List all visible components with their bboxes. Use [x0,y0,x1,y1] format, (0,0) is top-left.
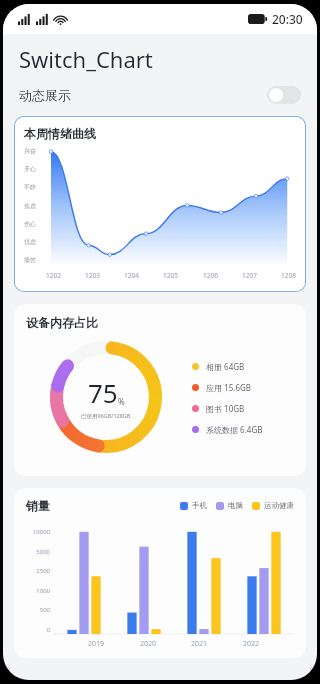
staticText: 1208 [281,271,296,280]
staticText: 20:30 [272,11,303,27]
button[interactable]: 销量 [14,488,306,658]
staticText: 0 [24,626,50,634]
staticText: 平静 [24,183,44,191]
staticText: 焦虑 [24,202,44,210]
staticText: 设备内存占比 [26,315,98,330]
staticText: 系统数据 6.4GB [206,424,263,435]
staticText: 已使用96GB/128GB [81,412,131,420]
other: 动态展示开关 [267,86,301,104]
button[interactable]: 设备内存占比 [14,304,306,476]
staticText: 应用 15.6GB [206,382,251,393]
staticText: 2500 [24,567,50,575]
staticText: 1202 [46,271,61,280]
staticText: 开心 [24,165,44,173]
staticText: 痛苦 [24,256,44,264]
staticText: 2021 [191,639,208,649]
staticText: 本周情绪曲线 [24,126,96,141]
staticText: 图书 10GB [206,403,245,414]
staticText: 10000 [24,528,50,536]
staticText: 1000 [24,587,50,595]
staticText: 动态展示 [19,87,71,103]
staticText: 2020 [140,639,157,649]
button[interactable]: 本周情绪曲线 [14,116,306,292]
staticText: 2019 [88,639,105,649]
staticText: 1207 [242,271,257,280]
staticText: 伤心 [24,220,44,228]
staticText: % [118,396,125,407]
staticText: Switch_Chart [19,44,153,74]
staticText: 1205 [163,271,178,280]
staticText: 相册 64GB [206,361,245,372]
staticText: 5000 [24,548,50,556]
staticText: 手机 [192,501,207,510]
staticText: 2022 [243,639,260,649]
staticText: 1204 [124,271,139,280]
staticText: 1206 [203,271,218,280]
staticText: 运动健康 [264,501,294,510]
staticText: 电脑 [228,501,243,510]
staticText: 忧虑 [24,238,44,246]
staticText: 销量 [26,498,50,513]
staticText: 75 [88,375,118,410]
staticText: 500 [24,606,50,614]
button[interactable]: 动态展示 [19,84,301,106]
staticText: 1203 [85,271,100,280]
staticText: 兴奋 [24,147,44,155]
